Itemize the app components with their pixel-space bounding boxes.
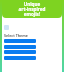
staticText: Select Theme <box>4 33 28 38</box>
button[interactable] <box>4 56 36 60</box>
button[interactable] <box>4 45 36 49</box>
staticText: Unique art-inspired emojis! <box>2 1 62 17</box>
button[interactable] <box>4 39 36 43</box>
button[interactable] <box>4 50 36 54</box>
